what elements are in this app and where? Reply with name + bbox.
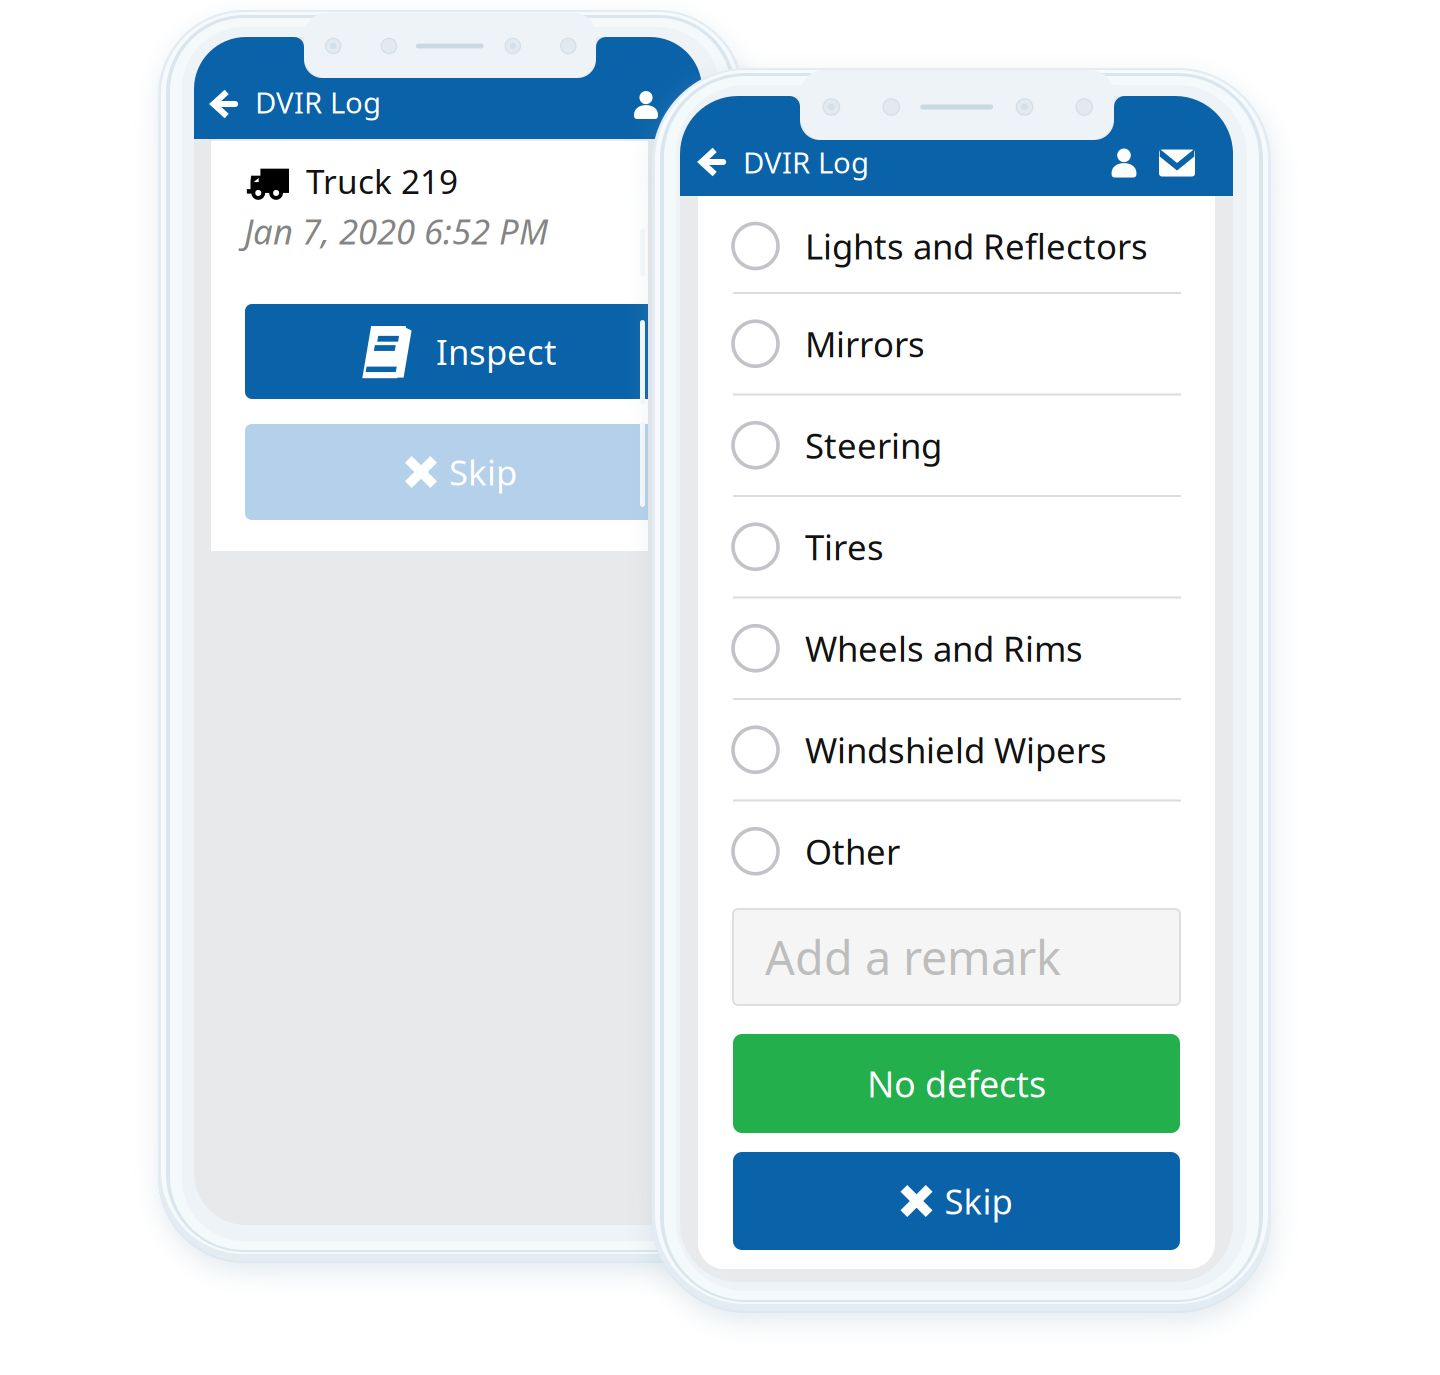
button[interactable]: No defects xyxy=(733,1034,1180,1133)
button[interactable]: Skip xyxy=(245,424,691,520)
staticText: Truck 219 xyxy=(306,159,458,203)
button[interactable]: Skip xyxy=(733,1152,1180,1250)
button[interactable]: Tires xyxy=(698,496,1215,597)
button[interactable]: Other xyxy=(698,800,1215,902)
staticText: DVIR Log xyxy=(255,82,381,121)
button[interactable]: DVIR Log xyxy=(743,138,913,186)
staticText: DVIR Log xyxy=(743,142,869,181)
staticText: Inspect xyxy=(436,328,557,374)
button[interactable]: Windshield Wipers xyxy=(698,699,1215,800)
staticText: Skip xyxy=(944,1178,1012,1224)
staticText: Mirrors xyxy=(805,321,925,367)
button[interactable]: Profile xyxy=(1102,141,1146,185)
staticText: Tires xyxy=(805,524,884,570)
button[interactable]: Mirrors xyxy=(698,293,1215,394)
button[interactable]: Lights and Reflectors xyxy=(698,199,1215,293)
button[interactable]: Messages xyxy=(1153,141,1201,185)
staticText: Other xyxy=(805,828,900,874)
button[interactable]: DVIR Log xyxy=(255,79,415,125)
button[interactable]: Inspect xyxy=(245,304,691,399)
staticText: No defects xyxy=(867,1060,1046,1107)
button[interactable]: Profile xyxy=(625,84,667,126)
staticText: Add a remark xyxy=(765,926,1061,988)
staticText: Windshield Wipers xyxy=(805,727,1107,773)
staticText: Steering xyxy=(805,422,942,468)
staticText: Lights and Reflectors xyxy=(805,223,1148,269)
staticText: Wheels and Rims xyxy=(805,625,1083,671)
button[interactable]: Add a remark xyxy=(733,909,1180,1005)
staticText: Skip xyxy=(449,449,517,495)
button[interactable]: Steering xyxy=(698,394,1215,496)
staticText: Jan 7, 2020 6:52 PM xyxy=(244,208,548,254)
button[interactable]: Wheels and Rims xyxy=(698,597,1215,699)
